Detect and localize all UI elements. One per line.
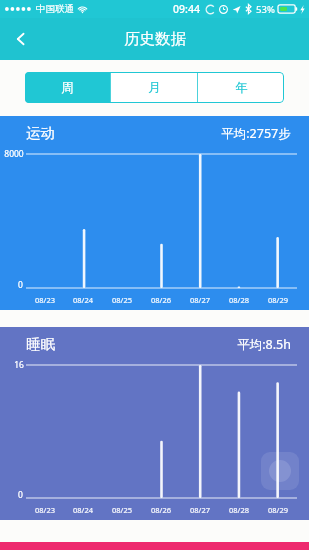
staticText: 0 xyxy=(18,489,23,501)
staticText: 08/26 xyxy=(151,505,171,515)
staticText: 08/28 xyxy=(229,295,249,305)
staticText: 月 xyxy=(148,80,161,96)
staticText: 08/23 xyxy=(35,295,55,305)
staticText: 年 xyxy=(235,80,248,96)
staticText: 08/25 xyxy=(112,505,132,515)
staticText: 中国联通 xyxy=(36,3,74,15)
staticText: 历史数据 xyxy=(124,29,186,49)
staticText: 睡眠 xyxy=(26,335,55,353)
staticText: 运动 xyxy=(26,124,55,142)
staticText: 08/24 xyxy=(73,505,93,515)
staticText: 08/25 xyxy=(112,295,132,305)
staticText: 09:44 xyxy=(173,2,200,16)
staticText: 08/23 xyxy=(35,505,55,515)
staticText: 0 xyxy=(18,279,23,291)
staticText: 16 xyxy=(14,359,24,371)
button[interactable]: 年 xyxy=(198,72,284,103)
button[interactable]: 运动 xyxy=(0,116,309,310)
staticText: 08/27 xyxy=(190,295,210,305)
button[interactable]: 周 xyxy=(25,72,110,103)
button[interactable]: Back xyxy=(0,18,42,60)
button[interactable]: 睡眠 xyxy=(0,327,309,520)
staticText: 周 xyxy=(61,80,74,96)
staticText: 08/27 xyxy=(190,505,210,515)
staticText: 平均:2757步 xyxy=(221,125,291,142)
staticText: 08/28 xyxy=(229,505,249,515)
staticText: 08/26 xyxy=(151,295,171,305)
staticText: 08/29 xyxy=(268,505,288,515)
staticText: 08/29 xyxy=(268,295,288,305)
staticText: 53% xyxy=(256,3,275,16)
staticText: 08/24 xyxy=(73,295,93,305)
button[interactable]: 月 xyxy=(111,72,197,103)
staticText: 8000 xyxy=(4,148,24,160)
staticText: 平均:8.5h xyxy=(237,336,291,353)
